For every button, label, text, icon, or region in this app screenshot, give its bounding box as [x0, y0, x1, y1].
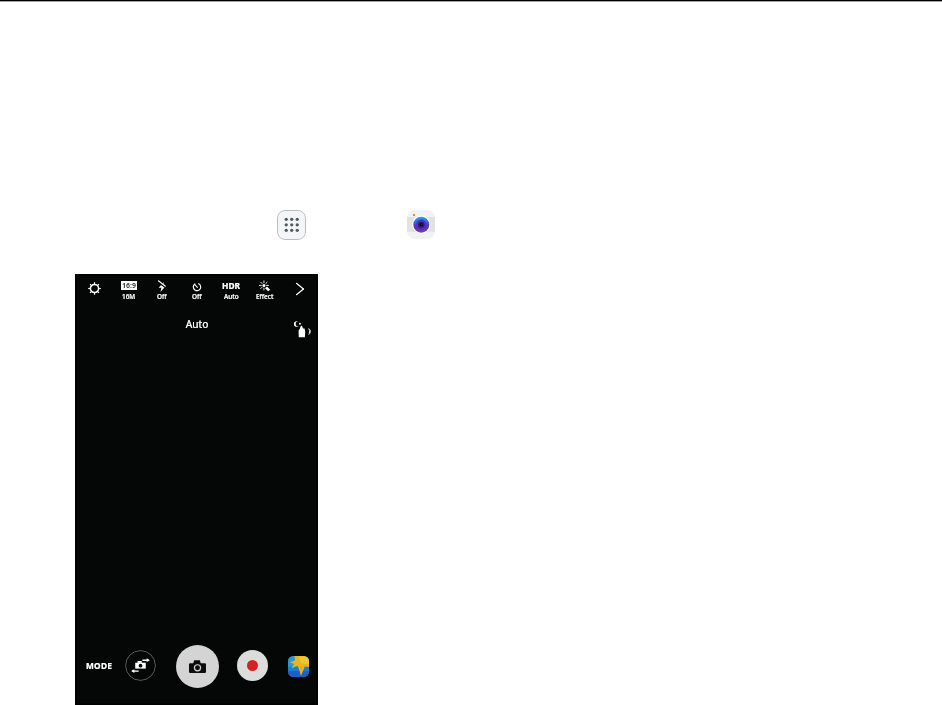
- button[interactable]: Apps: [277, 210, 306, 240]
- button[interactable]: More settings: [292, 281, 308, 297]
- button[interactable]: Switch camera: [125, 650, 156, 681]
- staticText: Effect: [256, 292, 274, 301]
- button[interactable]: Off: [181, 277, 213, 303]
- staticText: Auto: [224, 292, 239, 301]
- button[interactable]: Off: [146, 277, 178, 303]
- button[interactable]: Low light warning: [294, 321, 311, 338]
- button[interactable]: Effect: [249, 277, 281, 303]
- staticText: Off: [192, 292, 202, 301]
- staticText: Off: [157, 292, 167, 301]
- button[interactable]: Take photo: [176, 645, 219, 688]
- button[interactable]: HDR Auto: [215, 277, 247, 303]
- button[interactable]: Gallery: [288, 656, 309, 677]
- staticText: 16M: [122, 292, 136, 301]
- staticText: 16:9: [122, 281, 136, 290]
- staticText: HDR: [222, 280, 241, 291]
- button[interactable]: MODE: [81, 658, 117, 672]
- staticText: Auto: [167, 317, 227, 331]
- staticText: MODE: [86, 660, 113, 671]
- button[interactable]: Settings: [88, 282, 101, 295]
- button[interactable]: Camera app: [407, 210, 435, 239]
- button[interactable]: Picture size 16:9 16M: [114, 277, 144, 303]
- button[interactable]: Record video: [237, 650, 268, 681]
